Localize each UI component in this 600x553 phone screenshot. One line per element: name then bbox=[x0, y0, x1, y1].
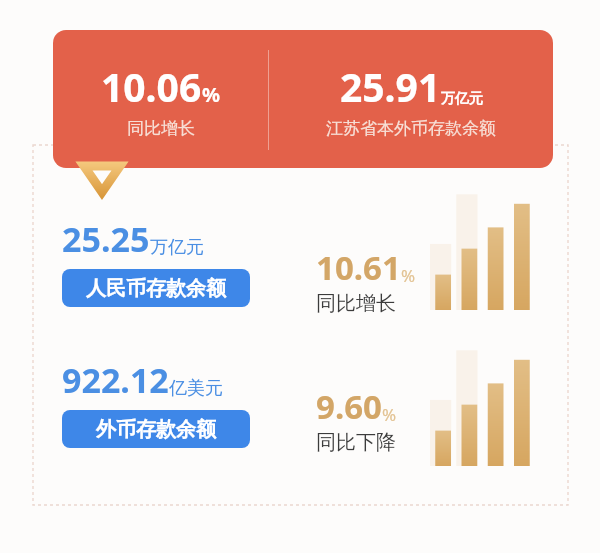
button[interactable]: 外币存款余额 bbox=[62, 410, 250, 448]
staticText: 25.91 bbox=[340, 60, 441, 113]
staticText: 同比增长 bbox=[127, 118, 195, 139]
staticText: 922.12 bbox=[62, 357, 169, 403]
staticText: % bbox=[382, 403, 397, 426]
staticText: 江苏省本外币存款余额 bbox=[326, 118, 496, 139]
staticText: % bbox=[401, 264, 416, 287]
staticText: 亿美元 bbox=[169, 377, 223, 400]
button[interactable]: 10.06 bbox=[53, 30, 553, 168]
other: Selected indicator bbox=[79, 161, 125, 197]
staticText: 外币存款余额 bbox=[96, 417, 216, 442]
staticText: 10.06 bbox=[101, 60, 202, 113]
staticText: 25.25 bbox=[62, 216, 150, 262]
staticText: 万亿元 bbox=[441, 90, 483, 108]
staticText: 同比增长 bbox=[316, 291, 396, 316]
staticText: 10.61 bbox=[316, 245, 401, 290]
staticText: 同比下降 bbox=[316, 430, 396, 455]
staticText: % bbox=[202, 81, 221, 108]
staticText: 9.60 bbox=[316, 384, 382, 429]
staticText: 人民币存款余额 bbox=[86, 276, 226, 301]
staticText: 万亿元 bbox=[150, 236, 204, 259]
button[interactable]: 人民币存款余额 bbox=[62, 269, 250, 307]
